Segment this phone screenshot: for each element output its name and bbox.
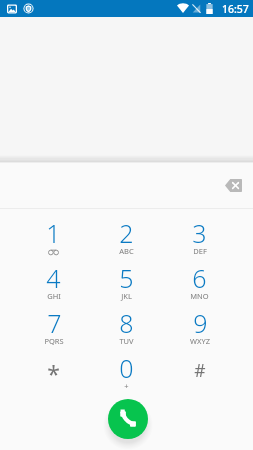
staticText: * (47, 358, 60, 389)
staticText: + (124, 381, 129, 391)
staticText: WXYZ (190, 336, 210, 346)
staticText: ABC (119, 246, 134, 256)
staticText: 3 (192, 216, 207, 250)
staticText: # (194, 358, 206, 382)
button[interactable]: # (163, 349, 236, 394)
button[interactable]: 3 (163, 214, 236, 259)
staticText: 9 (193, 306, 208, 340)
button[interactable]: 6 (163, 259, 236, 304)
staticText: 4 (46, 261, 61, 295)
button[interactable]: 7 (17, 304, 90, 349)
staticText: GHI (47, 291, 61, 301)
button[interactable]: 4 (17, 259, 90, 304)
button[interactable]: * (17, 349, 90, 394)
staticText: 8 (119, 306, 134, 340)
staticText: JKL (121, 291, 132, 301)
button[interactable]: 0 (90, 349, 163, 394)
staticText: 5 (119, 261, 134, 295)
staticText: TUV (119, 336, 134, 346)
button[interactable]: 9 (163, 304, 236, 349)
staticText: MNO (190, 291, 209, 301)
staticText: 16:57 (222, 2, 249, 16)
staticText: 2 (119, 216, 134, 250)
button[interactable]: Call (108, 399, 148, 439)
staticText: DEF (193, 246, 207, 256)
staticText: 1 (46, 216, 61, 250)
staticText: 7 (47, 306, 62, 340)
staticText: 0 (119, 351, 134, 385)
button[interactable]: 8 (90, 304, 163, 349)
staticText: PQRS (44, 336, 64, 346)
button[interactable]: 5 (90, 259, 163, 304)
button[interactable]: Backspace (218, 170, 248, 200)
button[interactable]: 2 (90, 214, 163, 259)
button[interactable]: 1 (17, 214, 90, 259)
staticText: 6 (192, 261, 207, 295)
